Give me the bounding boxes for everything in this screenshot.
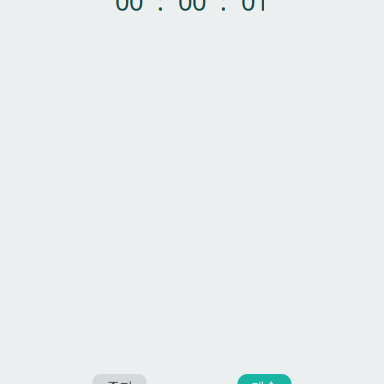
button[interactable]: 계속 — [237, 374, 291, 384]
staticText: 중지 — [106, 379, 132, 384]
staticText: : — [157, 0, 164, 18]
button[interactable]: 중지 — [92, 374, 146, 384]
staticText: 00 — [115, 0, 143, 18]
staticText: 01 — [241, 0, 269, 18]
staticText: 00 — [178, 0, 206, 18]
staticText: 계속 — [251, 379, 277, 384]
staticText: : — [220, 0, 227, 18]
